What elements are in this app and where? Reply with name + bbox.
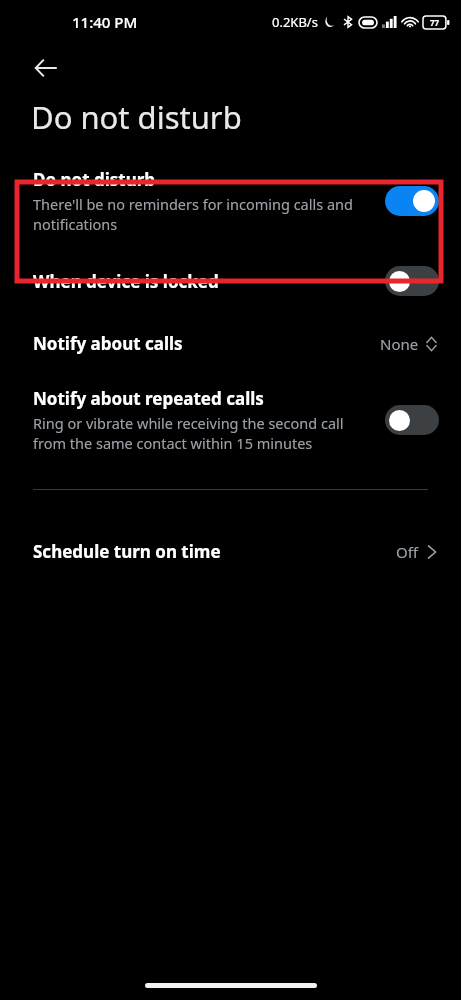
staticText: 77: [430, 17, 440, 28]
button[interactable]: Notify about calls: [0, 314, 461, 373]
staticText: Notify about repeated calls: [33, 387, 264, 410]
button[interactable]: Toggle on: [385, 186, 439, 216]
staticText: None: [380, 334, 419, 354]
button[interactable]: Schedule turn on time: [0, 526, 461, 577]
staticText: 11:40 PM: [72, 12, 138, 32]
staticText: 0.2KB/s: [272, 13, 318, 31]
button[interactable]: Toggle off: [385, 405, 439, 435]
staticText: Ring or vibrate while receiving the seco…: [33, 413, 375, 453]
button[interactable]: Notify about repeated calls: [0, 373, 461, 467]
button[interactable]: When device is locked: [0, 248, 461, 314]
staticText: Notify about calls: [33, 332, 380, 355]
staticText: Do not disturb: [33, 168, 156, 191]
staticText: There'll be no reminders for incoming ca…: [33, 194, 375, 234]
staticText: When device is locked: [33, 270, 385, 293]
button[interactable]: Do not disturb: [0, 154, 461, 248]
staticText: Off: [396, 542, 419, 562]
button[interactable]: Toggle off: [385, 266, 439, 296]
button[interactable]: Back: [22, 44, 70, 92]
staticText: Do not disturb: [31, 96, 242, 138]
staticText: Schedule turn on time: [33, 540, 396, 563]
